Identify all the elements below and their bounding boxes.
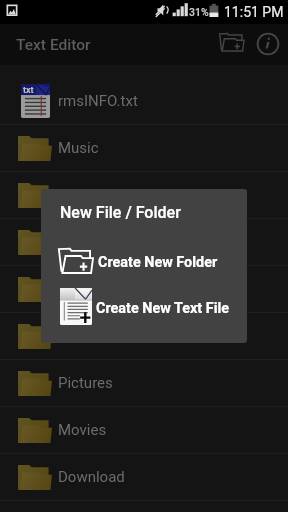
button[interactable]: New folder xyxy=(209,24,252,65)
staticText: Podcasts xyxy=(58,186,121,204)
staticText: 11:51 PM xyxy=(224,4,284,20)
staticText: Notifications xyxy=(58,327,144,345)
button[interactable]: Create New Folder xyxy=(41,244,247,281)
staticText: Alarms xyxy=(58,280,106,298)
button[interactable]: Info xyxy=(252,24,288,65)
staticText: Ringtones xyxy=(58,233,125,251)
button[interactable]: Pictures xyxy=(0,360,288,406)
staticText: New File / Folder xyxy=(60,203,181,222)
button[interactable]: txt xyxy=(0,78,288,124)
button[interactable]: Notifications xyxy=(0,313,288,359)
staticText: Text Editor xyxy=(16,36,91,54)
staticText: Music xyxy=(58,139,99,157)
button[interactable]: Alarms xyxy=(0,266,288,312)
staticText: Create New Folder xyxy=(98,254,218,271)
staticText: Movies xyxy=(58,421,107,439)
button[interactable]: Create New Text File xyxy=(41,286,247,331)
staticText: Pictures xyxy=(58,374,113,392)
button[interactable]: Podcasts xyxy=(0,172,288,218)
staticText: Create New Text File xyxy=(96,300,230,317)
button[interactable]: Ringtones xyxy=(0,219,288,265)
button[interactable]: Movies xyxy=(0,407,288,453)
staticText: txt xyxy=(23,85,34,96)
staticText: rmsINFO.txt xyxy=(58,92,138,110)
button[interactable]: Download xyxy=(0,454,288,500)
staticText: Download xyxy=(58,468,125,486)
button[interactable]: Music xyxy=(0,125,288,171)
staticText: 31% xyxy=(189,6,209,18)
